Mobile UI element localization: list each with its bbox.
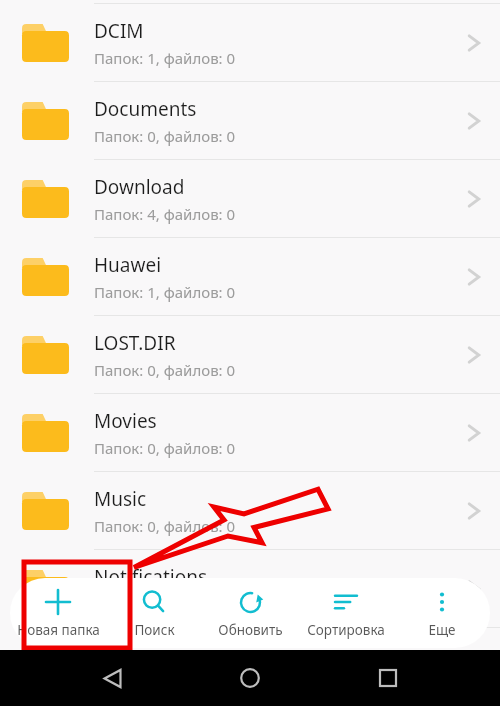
button[interactable]: Documents <box>0 82 500 160</box>
staticText: Movies <box>94 408 157 434</box>
other: Сортировка <box>333 589 359 615</box>
staticText: Еще <box>428 621 456 639</box>
staticText: Папок: 0, файлов: 0 <box>94 360 236 380</box>
staticText: Обновить <box>218 621 283 639</box>
staticText: Папок: 0, файлов: 0 <box>94 594 236 614</box>
button[interactable]: Music <box>0 472 500 550</box>
button[interactable]: DCIM <box>0 4 500 82</box>
other: Поиск <box>142 590 166 614</box>
button[interactable]: Movies <box>0 394 500 472</box>
button[interactable]: Поиск <box>106 578 202 648</box>
button[interactable]: Notifications <box>0 550 500 628</box>
button[interactable]: Еще <box>394 578 490 648</box>
button[interactable]: Huawei <box>0 238 500 316</box>
button[interactable]: LOST.DIR <box>0 316 500 394</box>
staticText: Папок: 0, файлов: 0 <box>94 438 236 458</box>
staticText: Папок: 1, файлов: 0 <box>94 282 236 302</box>
button[interactable]: Home <box>228 656 272 700</box>
staticText: Documents <box>94 96 197 122</box>
staticText: Папок: 0, файлов: 0 <box>94 126 236 146</box>
staticText: Music <box>94 486 147 512</box>
staticText: Поиск <box>134 621 175 639</box>
staticText: Папок: 1, файлов: 0 <box>94 48 236 68</box>
button[interactable]: Download <box>0 160 500 238</box>
other: Обновить <box>238 590 263 615</box>
button[interactable]: Обновить <box>202 578 298 648</box>
staticText: Notifications <box>94 564 208 590</box>
other: Новая папка <box>45 589 71 615</box>
staticText: LOST.DIR <box>94 330 176 356</box>
staticText: Новая папка <box>17 621 100 639</box>
staticText: Huawei <box>94 252 162 278</box>
staticText: Папок: 0, файлов: 0 <box>94 516 236 536</box>
button[interactable]: Recents <box>366 656 410 700</box>
staticText: Папок: 4, файлов: 0 <box>94 204 236 224</box>
staticText: DCIM <box>94 18 144 44</box>
button[interactable]: Back <box>90 656 134 700</box>
staticText: Download <box>94 174 185 200</box>
button[interactable]: Сортировка <box>298 578 394 648</box>
button[interactable]: Новая папка <box>10 578 106 648</box>
other: Еще <box>431 591 453 613</box>
staticText: Сортировка <box>307 621 385 639</box>
